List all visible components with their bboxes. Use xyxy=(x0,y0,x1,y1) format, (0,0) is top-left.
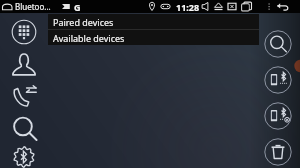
button[interactable]: Contacts xyxy=(11,51,37,77)
button[interactable]: Available devices xyxy=(48,30,259,45)
button[interactable]: Dialpad xyxy=(11,19,37,45)
staticText: Paired devices xyxy=(53,16,114,28)
button[interactable]: Connect device xyxy=(264,66,292,94)
staticText: Available devices xyxy=(53,32,125,44)
button[interactable]: Paired devices xyxy=(48,14,259,29)
staticText: 11:28 xyxy=(176,1,200,13)
button[interactable]: Bluetooth settings xyxy=(13,146,35,168)
button[interactable]: Call log xyxy=(11,83,37,109)
staticText: G xyxy=(74,1,81,13)
button[interactable]: Delete device xyxy=(264,138,292,166)
button[interactable]: Disconnect device xyxy=(264,102,292,130)
staticText: Bluetoo... xyxy=(15,1,51,12)
button[interactable]: Search contacts xyxy=(11,115,37,141)
button[interactable]: Search for devices xyxy=(264,30,292,58)
